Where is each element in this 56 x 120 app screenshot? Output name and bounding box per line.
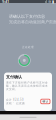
staticText: ıl ≋ ▮	[45, 0, 54, 4]
staticText: 9:41	[2, 0, 9, 4]
staticText: 完成后将自动返回商户页面	[9, 19, 56, 24]
staticText: 合计 ¥24.50 含税 · 已优惠	[6, 98, 25, 105]
staticText: 正在处理	[22, 45, 34, 49]
staticText: 请确认以下支付信息	[9, 14, 45, 19]
staticText: 确认	[42, 100, 48, 103]
button[interactable]: 确认	[41, 99, 50, 104]
staticText: 请在下方核对商户名称与支付金额，确认无误后点击按钮完成本次交易。	[6, 81, 48, 91]
staticText: 支付确认	[6, 74, 22, 79]
